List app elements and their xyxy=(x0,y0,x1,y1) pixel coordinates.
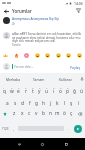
staticText: 2 xyxy=(11,86,13,89)
staticText: 7 xyxy=(46,86,48,89)
button[interactable]: React xyxy=(13,52,20,59)
staticText: Merhaba xyxy=(6,77,20,81)
button[interactable]: s xyxy=(11,96,19,108)
button[interactable]: d xyxy=(19,96,26,108)
button[interactable]: 4 xyxy=(22,84,29,96)
button[interactable]: v xyxy=(33,108,40,119)
staticText: m xyxy=(55,110,60,117)
staticText: q xyxy=(3,88,6,95)
button[interactable]: allse.n891 Sonuclarinizi en cok hazardan… xyxy=(0,30,85,47)
staticText: Anonymous Anonymous Bip Bip xyxy=(12,17,60,21)
button[interactable]: Shift xyxy=(0,108,10,119)
staticText: v xyxy=(35,110,38,117)
button[interactable]: c xyxy=(26,108,33,119)
button[interactable]: Kullanıcı xyxy=(52,73,78,84)
button[interactable]: React xyxy=(2,52,9,59)
button[interactable]: x xyxy=(18,108,26,119)
button[interactable]: i xyxy=(75,96,82,108)
staticText: Kullanıcı xyxy=(59,77,72,81)
button[interactable]: Recents xyxy=(62,140,71,149)
button[interactable]: n xyxy=(47,108,54,119)
button[interactable]: React xyxy=(23,52,30,59)
staticText: ?123 xyxy=(2,127,9,131)
button[interactable]: ğ xyxy=(71,84,78,96)
button[interactable]: React xyxy=(65,52,72,59)
button[interactable]: Voice input xyxy=(78,73,85,84)
button[interactable]: ö xyxy=(61,108,68,119)
staticText: allse.n891 Sonuclarinizi en cok hazardan… xyxy=(12,32,82,42)
button[interactable]: 3 xyxy=(15,84,22,96)
staticText: b xyxy=(42,110,45,117)
staticText: o xyxy=(59,88,62,95)
button[interactable]: 1 xyxy=(0,84,8,96)
button[interactable]: Merhaba xyxy=(0,73,26,84)
staticText: , xyxy=(13,126,15,131)
staticText: 14:06 xyxy=(74,1,83,6)
button[interactable]: k xyxy=(54,96,61,108)
staticText: ç xyxy=(70,110,73,117)
button[interactable]: Backspace xyxy=(75,108,85,119)
button[interactable]: Filter xyxy=(74,6,83,15)
button[interactable]: Back xyxy=(2,7,10,15)
button[interactable]: h xyxy=(40,96,47,108)
staticText: Yanıtla xyxy=(12,43,21,47)
staticText: l xyxy=(64,100,66,107)
button[interactable]: React xyxy=(44,52,51,59)
button[interactable]: 0 xyxy=(64,84,71,96)
button[interactable]: , xyxy=(11,119,17,138)
button[interactable]: b xyxy=(40,108,47,119)
button[interactable]: j xyxy=(47,96,54,108)
staticText: a xyxy=(6,100,9,107)
button[interactable]: Anonymous Anonymous Bip Bip xyxy=(0,15,85,26)
staticText: w xyxy=(10,88,14,95)
button[interactable]: Tamam xyxy=(26,73,52,84)
staticText: c xyxy=(28,110,31,117)
staticText: Tamam xyxy=(33,77,45,81)
staticText: ı xyxy=(53,88,55,95)
staticText: ş xyxy=(70,100,73,107)
staticText: r xyxy=(25,88,27,95)
button[interactable]: Send xyxy=(74,125,82,133)
button[interactable]: 7 xyxy=(43,84,50,96)
staticText: y xyxy=(38,88,41,95)
button[interactable]: l xyxy=(61,96,68,108)
button[interactable]: m xyxy=(54,108,61,119)
button[interactable]: React xyxy=(34,52,41,59)
button[interactable]: Back xyxy=(15,140,24,149)
staticText: d xyxy=(21,100,24,107)
staticText: i xyxy=(78,100,80,107)
button[interactable]: 6 xyxy=(36,84,43,96)
staticText: Yorum ekle... xyxy=(14,65,34,69)
staticText: 2h xyxy=(12,22,16,26)
staticText: t xyxy=(32,88,34,95)
button[interactable]: 5 xyxy=(29,84,36,96)
button[interactable]: Paylaş xyxy=(69,65,82,69)
button[interactable]: 9 xyxy=(57,84,64,96)
button[interactable]: 8 xyxy=(50,84,57,96)
staticText: ğ xyxy=(73,88,76,95)
staticText: . xyxy=(67,126,69,131)
button[interactable]: ş xyxy=(68,96,75,108)
staticText: n xyxy=(49,110,52,117)
staticText: ö xyxy=(63,110,66,117)
button[interactable]: ç xyxy=(68,108,75,119)
button[interactable]: f xyxy=(26,96,33,108)
staticText: j xyxy=(50,100,52,107)
button[interactable]: ?123 xyxy=(0,119,11,138)
staticText: x xyxy=(21,110,24,117)
staticText: e xyxy=(17,88,20,95)
staticText: h xyxy=(42,100,45,107)
button[interactable]: z xyxy=(10,108,18,119)
button[interactable]: a xyxy=(3,96,11,108)
button[interactable]: ü xyxy=(78,84,85,96)
button[interactable]: g xyxy=(33,96,40,108)
staticText: 1 xyxy=(3,86,5,89)
button[interactable]: Home xyxy=(38,140,47,149)
button[interactable]: 2 xyxy=(8,84,15,96)
button[interactable]: React xyxy=(55,52,62,59)
button[interactable]: React xyxy=(76,52,83,59)
button[interactable]: Yorum ekle... xyxy=(12,64,69,69)
staticText: 9 xyxy=(60,86,62,89)
